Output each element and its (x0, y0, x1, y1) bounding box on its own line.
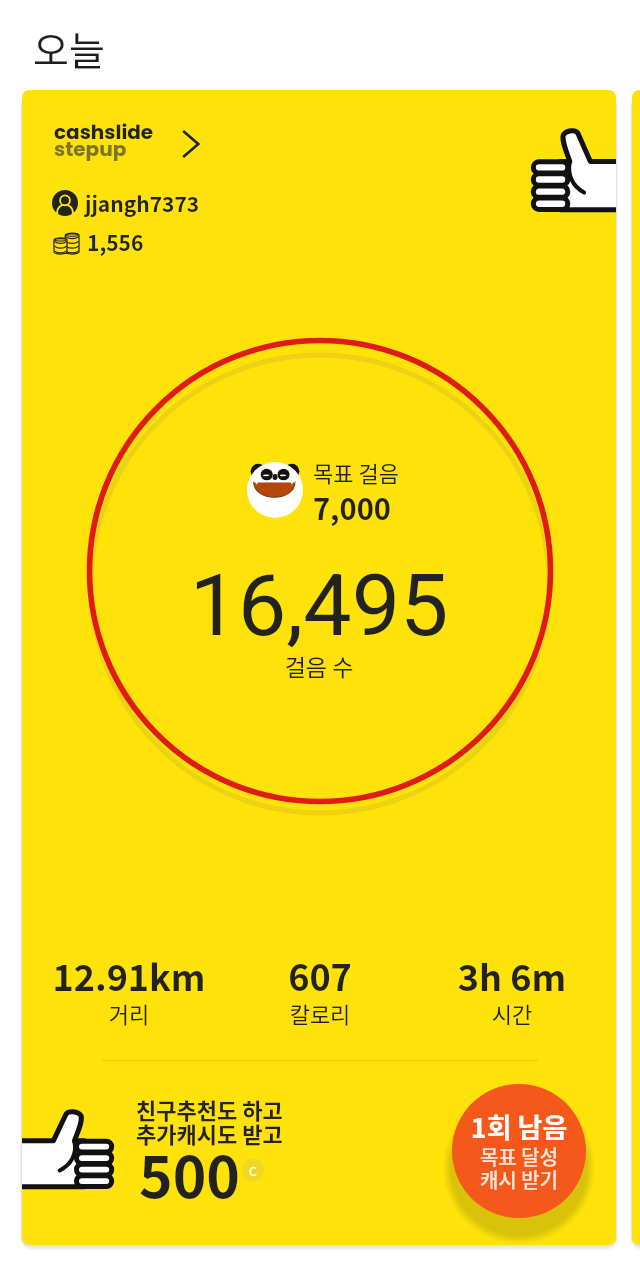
staticText: jjangh7373 (85, 188, 200, 218)
staticText: 3h 6m (415, 949, 609, 1001)
button[interactable]: cashslide (54, 118, 199, 164)
staticText: 1회 남음 (452, 1107, 586, 1146)
staticText: 시간 (415, 997, 609, 1029)
staticText: 걸음 수 (22, 649, 616, 682)
staticText: stepup (54, 135, 127, 163)
staticText: C (249, 1162, 257, 1179)
staticText: 16,495 (22, 555, 616, 656)
staticText: 목표 걸음 (313, 456, 399, 488)
staticText: 오늘 (33, 20, 105, 76)
staticText: 칼로리 (223, 997, 417, 1029)
staticText: 목표 달성 캐시 받기 (452, 1142, 586, 1194)
staticText: 7,000 (313, 486, 391, 528)
button[interactable] (632, 90, 640, 1245)
staticText: 추가캐시도 받고 (136, 1117, 283, 1149)
staticText: 거리 (32, 997, 226, 1029)
staticText: 607 (223, 949, 417, 1001)
button[interactable]: cashslide (22, 90, 616, 1245)
staticText: 500 (139, 1132, 240, 1215)
staticText: 12.91km (32, 949, 226, 1001)
other: Invite friends (24, 1110, 110, 1188)
staticText: 친구추천도 하고 (136, 1093, 283, 1125)
other: Thumbs up (535, 129, 616, 211)
staticText: 1,556 (87, 227, 144, 257)
staticText: cashslide (54, 118, 154, 146)
button[interactable]: 1회 남음 (452, 1084, 586, 1218)
